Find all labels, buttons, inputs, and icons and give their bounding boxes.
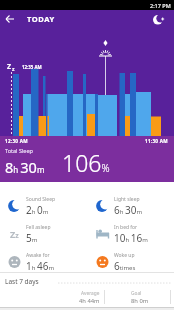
staticText: Average (81, 290, 100, 297)
staticText: In bed for (114, 224, 138, 231)
staticText: Awake for (26, 252, 50, 259)
staticText: 11:30 AM (145, 138, 168, 144)
staticText: 5m (26, 231, 38, 245)
staticText: 106% (62, 147, 110, 178)
staticText: Zz (10, 228, 19, 240)
staticText: Z (7, 62, 12, 72)
staticText: 2h 0m (26, 203, 49, 217)
button[interactable]: Awake for (8, 252, 96, 272)
staticText: 2:17 PM (150, 2, 171, 9)
button[interactable]: Sound Sleep (8, 196, 96, 217)
staticText: 12:30 AM (5, 138, 28, 144)
staticText: Goal (131, 290, 142, 297)
staticText: 12:35 AM (22, 64, 42, 70)
staticText: Sound Sleep (26, 196, 56, 203)
staticText: Woke up (114, 252, 135, 259)
button[interactable]: Light sleep (96, 196, 143, 217)
staticText: 8h 30m (5, 157, 45, 177)
staticText: 8h 0m (131, 297, 149, 305)
button[interactable]: Last 7 days (0, 273, 174, 288)
button[interactable]: In bed for (96, 224, 148, 245)
button[interactable]: Woke up (96, 252, 136, 272)
staticText: 6h 30m (114, 203, 143, 217)
button[interactable] (153, 13, 165, 25)
button[interactable]: Zz (8, 224, 96, 245)
staticText: Fell asleep (26, 224, 51, 231)
staticText: 10h 16m (114, 231, 148, 245)
staticText: 1h 46m (26, 259, 55, 272)
staticText: TODAY (27, 14, 55, 24)
staticText: Last 7 days (5, 277, 39, 286)
staticText: Light sleep (114, 196, 140, 203)
staticText: 6times (114, 259, 136, 272)
staticText: z (12, 66, 15, 73)
button[interactable] (4, 13, 16, 25)
staticText: 4h 44m (79, 297, 100, 305)
staticText: Total Sleep (5, 147, 33, 154)
